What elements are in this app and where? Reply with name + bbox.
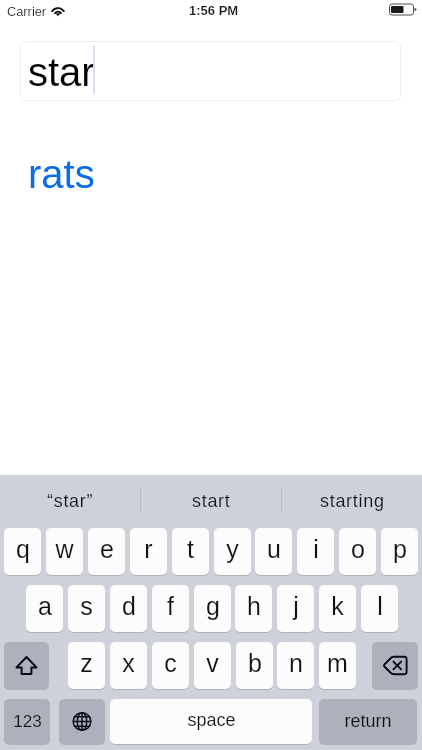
staticText: a: [38, 592, 52, 620]
staticText: f: [167, 592, 174, 620]
staticText: d: [122, 592, 136, 620]
button[interactable]: return: [319, 699, 417, 744]
staticText: j: [293, 592, 299, 620]
button[interactable]: c: [152, 642, 189, 689]
button[interactable]: z: [68, 642, 105, 689]
staticText: star: [28, 50, 95, 95]
button[interactable]: space: [110, 699, 312, 744]
staticText: return: [344, 711, 392, 731]
staticText: s: [80, 592, 93, 620]
staticText: t: [187, 535, 194, 563]
staticText: h: [247, 592, 261, 620]
button[interactable]: w: [46, 528, 83, 575]
button[interactable]: p: [381, 528, 418, 575]
button[interactable]: starting: [282, 475, 422, 523]
button[interactable]: r: [130, 528, 167, 575]
staticText: Carrier: [7, 4, 47, 18]
staticText: z: [80, 649, 93, 677]
staticText: e: [100, 535, 114, 563]
button[interactable]: s: [68, 585, 105, 632]
staticText: starting: [320, 491, 385, 511]
button[interactable]: rats: [28, 152, 95, 197]
staticText: k: [331, 592, 344, 620]
button[interactable]: start: [141, 475, 282, 523]
staticText: 1:56 PM: [189, 3, 239, 18]
button[interactable]: f: [152, 585, 189, 632]
button[interactable]: q: [4, 528, 41, 575]
staticText: y: [226, 535, 239, 563]
button[interactable]: v: [194, 642, 231, 689]
staticText: 123: [13, 712, 42, 731]
staticText: l: [377, 592, 383, 620]
staticText: b: [248, 649, 262, 677]
button[interactable]: 123: [4, 699, 50, 744]
button[interactable]: d: [110, 585, 147, 632]
button[interactable]: t: [172, 528, 209, 575]
button[interactable]: Shift: [4, 642, 49, 689]
button[interactable]: m: [319, 642, 356, 689]
button[interactable]: h: [235, 585, 272, 632]
button[interactable]: l: [361, 585, 398, 632]
staticText: w: [55, 535, 74, 563]
staticText: r: [144, 535, 153, 563]
button[interactable]: k: [319, 585, 356, 632]
staticText: u: [267, 535, 281, 563]
staticText: n: [289, 649, 303, 677]
staticText: m: [327, 649, 348, 677]
staticText: x: [122, 649, 135, 677]
button[interactable]: i: [297, 528, 334, 575]
button[interactable]: Next keyboard: [59, 699, 105, 744]
staticText: p: [393, 535, 407, 563]
button[interactable]: Delete: [372, 642, 418, 689]
button[interactable]: “star”: [0, 475, 141, 523]
staticText: start: [192, 491, 231, 511]
button[interactable]: a: [26, 585, 63, 632]
staticText: v: [206, 649, 219, 677]
button[interactable]: star: [20, 41, 401, 101]
staticText: space: [187, 710, 236, 730]
staticText: “star”: [47, 491, 94, 511]
staticText: i: [313, 535, 319, 563]
button[interactable]: e: [88, 528, 125, 575]
button[interactable]: o: [339, 528, 376, 575]
button[interactable]: y: [214, 528, 251, 575]
button[interactable]: n: [277, 642, 314, 689]
button[interactable]: u: [255, 528, 292, 575]
staticText: o: [351, 535, 365, 563]
button[interactable]: j: [277, 585, 314, 632]
staticText: q: [16, 535, 30, 563]
button[interactable]: b: [236, 642, 273, 689]
staticText: g: [206, 592, 220, 620]
button[interactable]: g: [194, 585, 231, 632]
staticText: c: [164, 649, 177, 677]
button[interactable]: x: [110, 642, 147, 689]
